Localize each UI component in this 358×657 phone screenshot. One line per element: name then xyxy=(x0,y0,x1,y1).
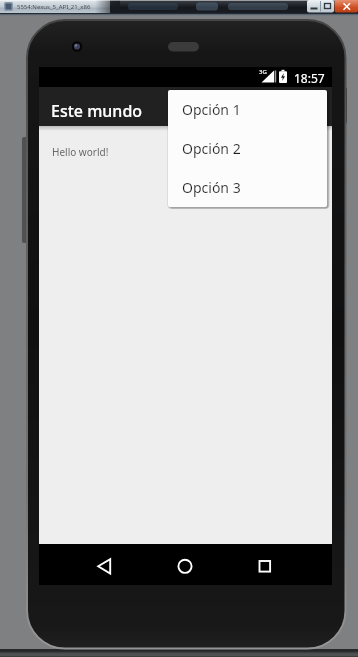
staticText: Hello world! xyxy=(52,145,109,159)
button[interactable] xyxy=(334,0,358,13)
staticText: 3G xyxy=(259,68,267,76)
staticText: Este mundo xyxy=(51,100,143,122)
button[interactable] xyxy=(245,544,285,584)
button[interactable]: Opción 2 xyxy=(168,129,327,168)
button[interactable] xyxy=(84,544,125,584)
button[interactable] xyxy=(165,544,205,584)
staticText: 18:57 xyxy=(294,70,325,86)
staticText: Opción 1 xyxy=(182,100,241,119)
button[interactable] xyxy=(307,0,320,13)
button[interactable]: Opción 3 xyxy=(168,168,327,207)
button[interactable] xyxy=(320,0,334,13)
staticText: Opción 3 xyxy=(182,178,241,197)
staticText: 5554:Nexus_5_API_21_x86 xyxy=(17,3,91,11)
staticText: Opción 2 xyxy=(182,139,241,158)
button[interactable]: Opción 1 xyxy=(168,90,327,129)
